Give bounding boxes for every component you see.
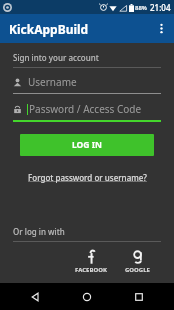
staticText: GOOGLE	[125, 266, 150, 274]
button[interactable]: Log in with Google	[123, 249, 152, 275]
button[interactable]: Log in with Facebook	[73, 249, 109, 275]
button[interactable]: Recent apps	[122, 283, 156, 310]
staticText: 88%	[135, 4, 147, 12]
staticText: KickAppBuild	[9, 21, 89, 37]
button[interactable]: Home	[70, 283, 104, 310]
button[interactable]: Back	[18, 283, 52, 310]
button[interactable]: More options	[148, 14, 174, 43]
staticText: 21:04	[150, 2, 171, 13]
button[interactable]: Forgot password or username?	[22, 170, 153, 185]
other: User	[13, 78, 22, 87]
staticText: Forgot password or username?	[28, 172, 147, 183]
staticText: Sign into your account	[13, 52, 99, 63]
button[interactable]: Password	[13, 102, 161, 122]
staticText: Password / Access Code	[29, 102, 142, 116]
staticText: LOG IN	[72, 139, 102, 151]
button[interactable]: User	[13, 75, 161, 94]
staticText: FACEBOOK	[75, 266, 107, 274]
button[interactable]: LOG IN	[20, 134, 154, 156]
other: Password	[13, 105, 22, 114]
staticText: Username	[28, 75, 77, 89]
staticText: Or log in with	[13, 226, 65, 237]
